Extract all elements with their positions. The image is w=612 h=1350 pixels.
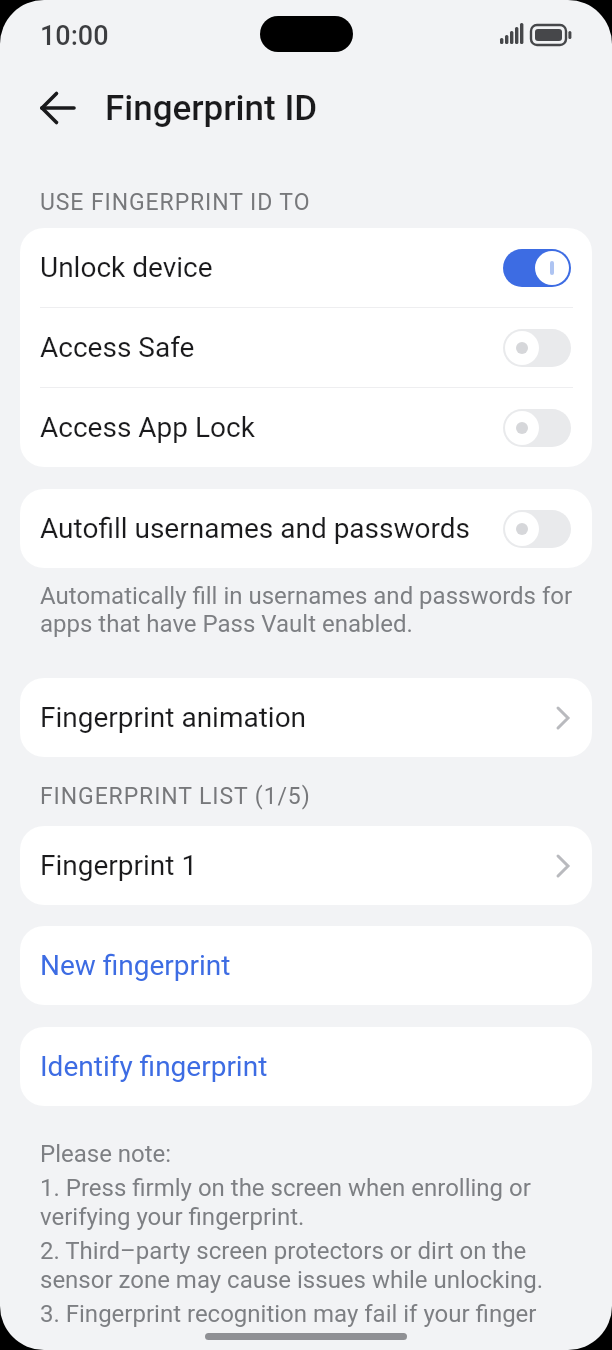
staticText: 10:00 [40,20,109,52]
button[interactable] [503,510,571,548]
staticText: New fingerprint [40,949,231,982]
staticText: Fingerprint ID [105,88,318,129]
staticText: USE FINGERPRINT ID TO [40,189,311,216]
button[interactable]: Access Safe [20,308,592,387]
button[interactable]: Unlock device [20,228,592,307]
staticText: Fingerprint animation [40,701,307,734]
staticText: Fingerprint 1 [40,849,198,882]
staticText: Unlock device [40,251,213,284]
staticText: Autofill usernames and passwords [40,512,470,545]
staticText: Automatically fill in usernames and pass… [40,582,578,638]
button[interactable]: Fingerprint 1 [20,826,592,905]
button[interactable]: Access App Lock [20,388,592,467]
staticText: FINGERPRINT LIST (1/5) [40,783,311,810]
button[interactable] [40,89,78,127]
staticText: 2. Third–party screen protectors or dirt… [40,1237,578,1294]
button[interactable] [503,409,571,447]
staticText: Identify fingerprint [40,1050,268,1083]
staticText: Please note: [40,1140,172,1168]
staticText: 3. Fingerprint recognition may fail if y… [40,1300,537,1328]
button[interactable]: Autofill usernames and passwords [20,489,592,568]
staticText: 1. Press firmly on the screen when enrol… [40,1174,578,1231]
button[interactable] [503,329,571,367]
button[interactable] [503,249,571,287]
button[interactable]: Fingerprint animation [20,678,592,757]
staticText: Access Safe [40,331,195,364]
button[interactable]: Identify fingerprint [20,1027,592,1106]
button[interactable]: New fingerprint [20,926,592,1005]
staticText: Access App Lock [40,411,255,444]
